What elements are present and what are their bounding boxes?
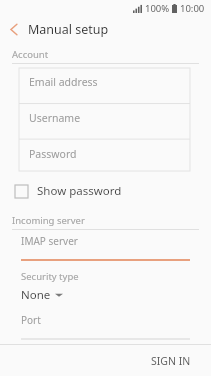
button[interactable]: Username (19, 104, 190, 140)
staticText: IMAP server (21, 234, 78, 248)
staticText: 100% (145, 2, 170, 15)
staticText: Account (12, 48, 49, 61)
button[interactable]: IMAP server (21, 234, 190, 263)
staticText: Port (21, 313, 41, 327)
staticText: Incoming server (12, 214, 85, 227)
staticText: Password (29, 147, 77, 161)
button[interactable]: Port (21, 313, 190, 342)
button[interactable]: Show password (15, 180, 122, 202)
staticText: Username (29, 111, 81, 125)
staticText: SIGN IN (151, 354, 191, 368)
button[interactable]: SIGN IN (145, 349, 197, 373)
staticText: Security type (21, 270, 79, 283)
staticText: Email address (29, 75, 98, 89)
staticText: Manual setup (28, 21, 109, 38)
staticText: 10:00 (180, 2, 205, 15)
button[interactable]: Security type (21, 270, 190, 303)
button[interactable]: Password (19, 140, 190, 171)
staticText: None (21, 287, 51, 303)
button[interactable]: Back (0, 17, 28, 42)
other: Select security type (55, 291, 63, 299)
button[interactable]: Email address (19, 68, 190, 104)
staticText: Show password (37, 183, 122, 199)
